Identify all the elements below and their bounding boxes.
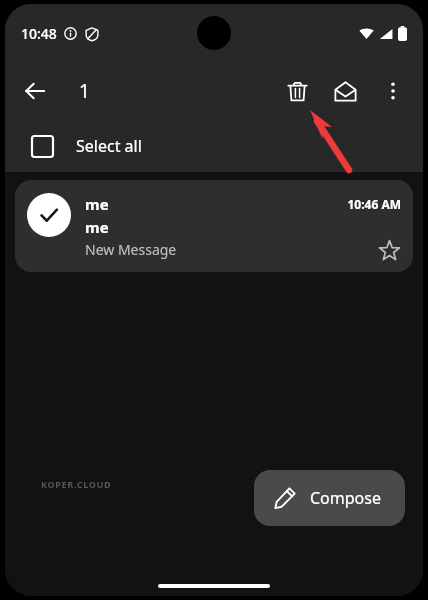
staticText: me: [85, 194, 109, 214]
staticText: 10:48: [21, 24, 57, 43]
button[interactable]: More options: [371, 69, 415, 113]
staticText: me: [85, 217, 109, 237]
button[interactable]: me: [15, 180, 413, 272]
staticText: Compose: [310, 487, 381, 509]
staticText: Select all: [76, 135, 142, 157]
staticText: KOPER.CLOUD: [41, 478, 112, 490]
button[interactable]: Star message: [373, 234, 405, 266]
staticText: New Message: [85, 240, 177, 259]
button[interactable]: Compose: [254, 470, 405, 526]
staticText: 1: [79, 78, 90, 104]
button[interactable]: Delete: [275, 69, 319, 113]
button[interactable]: Select all: [5, 120, 423, 172]
button[interactable]: Back: [13, 69, 57, 113]
staticText: 10:46 AM: [347, 196, 401, 212]
button[interactable]: Mark as read: [323, 69, 367, 113]
